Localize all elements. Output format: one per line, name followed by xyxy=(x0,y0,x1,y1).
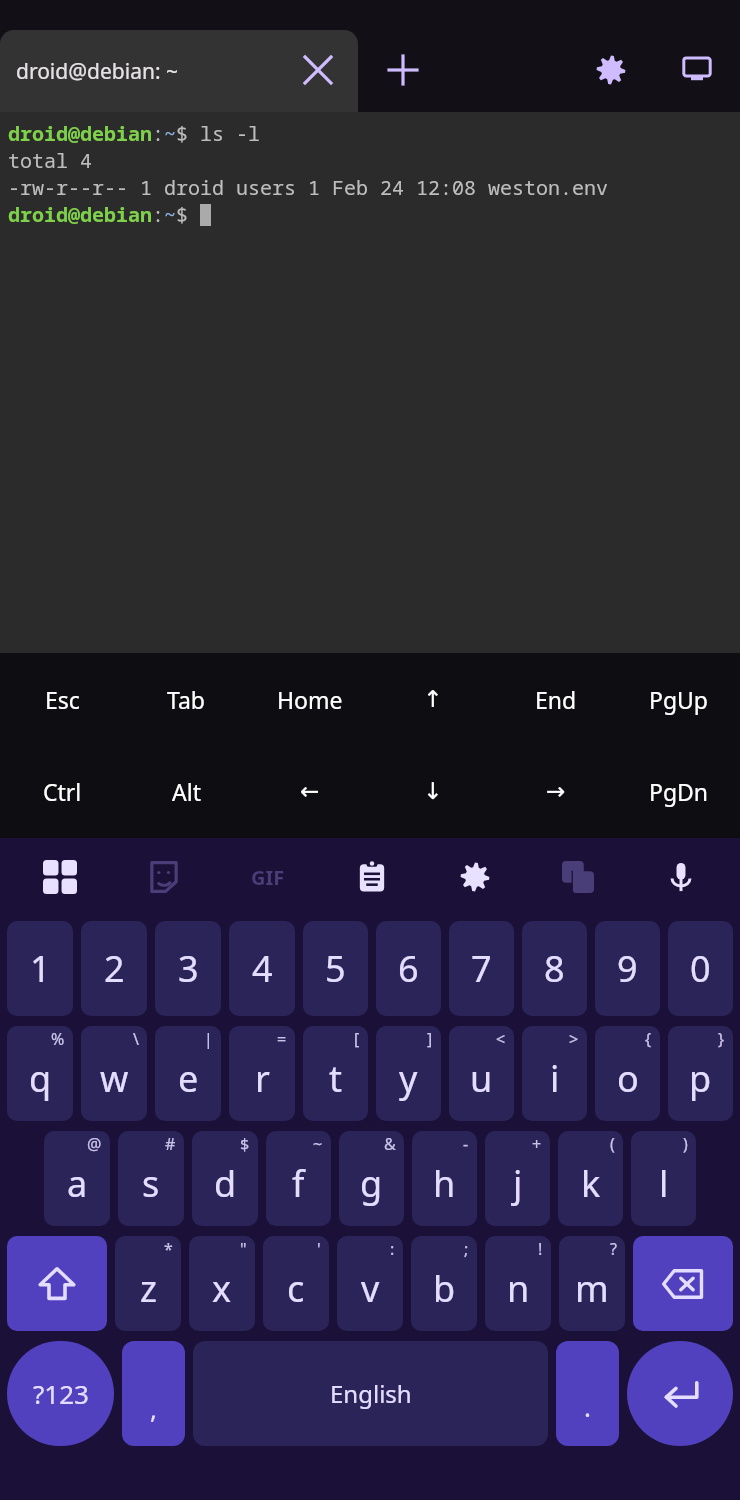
button[interactable]: ↑ xyxy=(371,653,494,745)
button[interactable]: ' xyxy=(263,1236,329,1331)
button[interactable]: Close tab xyxy=(290,42,346,98)
staticText: 5 xyxy=(325,944,346,993)
button[interactable]: droid@debian: ~ xyxy=(0,30,358,112)
button[interactable]: { xyxy=(595,1026,660,1121)
button[interactable]: < xyxy=(449,1026,514,1121)
staticText: ! xyxy=(538,1238,543,1260)
button[interactable]: Ctrl xyxy=(0,745,124,838)
button[interactable]: : xyxy=(337,1236,403,1331)
button[interactable]: Voice input xyxy=(629,838,732,916)
button[interactable]: - xyxy=(412,1131,477,1226)
button[interactable]: ) xyxy=(631,1131,696,1226)
button[interactable]: 7 xyxy=(449,921,514,1016)
button[interactable]: , xyxy=(122,1341,185,1446)
button[interactable]: . xyxy=(556,1341,619,1446)
button[interactable]: ~ xyxy=(266,1131,331,1226)
button[interactable]: ( xyxy=(558,1131,623,1226)
button[interactable]: [ xyxy=(303,1026,368,1121)
button[interactable]: & xyxy=(339,1131,404,1226)
staticText: " xyxy=(240,1238,247,1260)
button[interactable]: GIF xyxy=(216,838,320,916)
staticText: \ xyxy=(133,1028,139,1050)
staticText: End xyxy=(535,684,577,715)
staticText: ↓ xyxy=(423,778,443,805)
staticText: + xyxy=(532,1133,542,1155)
button[interactable]: ↓ xyxy=(371,745,494,838)
button[interactable]: ] xyxy=(376,1026,441,1121)
button[interactable]: Emoji grid xyxy=(8,838,112,916)
button[interactable]: 9 xyxy=(595,921,660,1016)
staticText: -rw-r--r-- 1 droid users 1 Feb 24 12:08 … xyxy=(8,174,608,201)
button[interactable]: droid@debian xyxy=(0,112,740,653)
button[interactable]: + xyxy=(485,1131,550,1226)
staticText: Esc xyxy=(45,684,80,715)
button[interactable]: * xyxy=(115,1236,181,1331)
button[interactable]: % xyxy=(7,1026,73,1121)
button[interactable]: Translate xyxy=(526,838,629,916)
staticText: $ ls -l xyxy=(176,120,260,147)
staticText: ~ xyxy=(164,201,176,228)
staticText: ? xyxy=(610,1238,617,1260)
staticText: ~ xyxy=(313,1133,323,1155)
button[interactable]: 3 xyxy=(155,921,221,1016)
staticText: c xyxy=(287,1264,305,1313)
button[interactable]: End xyxy=(494,653,617,745)
staticText: { xyxy=(645,1028,652,1050)
button[interactable]: Clipboard xyxy=(320,838,423,916)
staticText: 8 xyxy=(544,944,565,993)
button[interactable]: " xyxy=(189,1236,255,1331)
button[interactable]: ?123 xyxy=(7,1341,114,1446)
staticText: ( xyxy=(610,1133,615,1155)
button[interactable]: \ xyxy=(81,1026,147,1121)
button[interactable]: 5 xyxy=(303,921,368,1016)
button[interactable]: PgDn xyxy=(617,745,740,838)
button[interactable]: Stickers xyxy=(112,838,216,916)
button[interactable]: Display xyxy=(669,42,725,98)
button[interactable]: Backspace xyxy=(633,1236,733,1331)
button[interactable]: Settings xyxy=(583,42,639,98)
staticText: u xyxy=(470,1054,493,1103)
button[interactable]: Alt xyxy=(124,745,248,838)
button[interactable]: @ xyxy=(44,1131,110,1226)
button[interactable]: > xyxy=(522,1026,587,1121)
staticText: 0 xyxy=(690,944,711,993)
button[interactable]: } xyxy=(668,1026,733,1121)
button[interactable]: Shift xyxy=(7,1236,107,1331)
button[interactable]: ? xyxy=(559,1236,625,1331)
button[interactable]: 2 xyxy=(81,921,147,1016)
button[interactable]: English xyxy=(193,1341,548,1446)
staticText: v xyxy=(361,1264,380,1313)
staticText: q xyxy=(29,1054,52,1103)
staticText: ↑ xyxy=(423,686,443,713)
button[interactable]: ← xyxy=(248,745,371,838)
staticText: PgDn xyxy=(649,776,709,807)
button[interactable]: 4 xyxy=(229,921,295,1016)
staticText: f xyxy=(292,1159,305,1208)
button[interactable]: $ xyxy=(192,1131,258,1226)
staticText: PgUp xyxy=(649,684,709,715)
button[interactable]: 1 xyxy=(7,921,73,1016)
button[interactable]: # xyxy=(118,1131,184,1226)
button[interactable]: Enter xyxy=(627,1341,733,1446)
button[interactable]: Esc xyxy=(0,653,124,745)
staticText: 3 xyxy=(178,944,199,993)
button[interactable]: 8 xyxy=(522,921,587,1016)
button[interactable]: Tab xyxy=(124,653,248,745)
button[interactable]: 6 xyxy=(376,921,441,1016)
button[interactable]: 0 xyxy=(668,921,733,1016)
staticText: English xyxy=(330,1377,412,1410)
button[interactable]: → xyxy=(494,745,617,838)
button[interactable]: | xyxy=(155,1026,221,1121)
button[interactable]: = xyxy=(229,1026,295,1121)
button[interactable]: ; xyxy=(411,1236,477,1331)
staticText: : xyxy=(390,1238,395,1260)
staticText: droid@debian: ~ xyxy=(16,57,179,86)
button[interactable]: New tab xyxy=(375,42,431,98)
button[interactable]: Settings xyxy=(423,838,526,916)
staticText: total 4 xyxy=(8,147,92,174)
staticText: → xyxy=(546,778,566,805)
staticText: $ xyxy=(176,201,200,228)
button[interactable]: PgUp xyxy=(617,653,740,745)
button[interactable]: Home xyxy=(248,653,371,745)
button[interactable]: ! xyxy=(485,1236,551,1331)
